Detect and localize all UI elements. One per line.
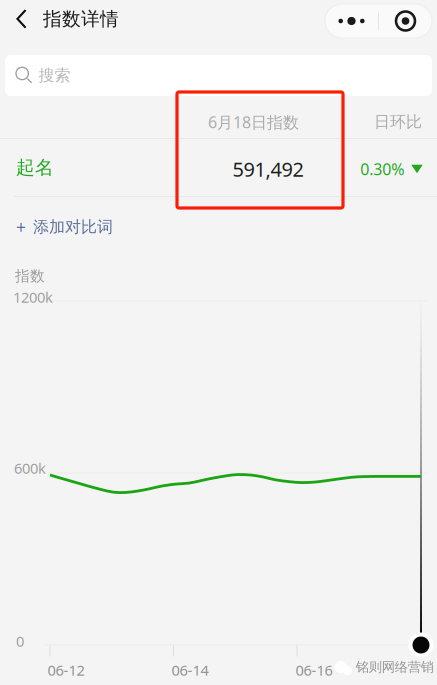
staticText: + <box>16 215 26 238</box>
staticText: 06-14 <box>171 660 208 680</box>
staticText: 指数详情 <box>43 7 119 30</box>
staticText: 06-16 <box>295 660 332 680</box>
staticText: 600k <box>14 458 46 478</box>
button[interactable]: 更多 <box>325 4 378 38</box>
staticText: 1200k <box>13 287 53 307</box>
staticText: 591,492 <box>232 156 303 182</box>
staticText: 添加对比词 <box>33 217 113 237</box>
staticText: 搜索 <box>38 66 70 85</box>
staticText: 指数 <box>15 267 45 285</box>
staticText: 日环比 <box>374 112 422 132</box>
button[interactable]: 关闭 <box>379 4 432 38</box>
staticText: 起名 <box>16 156 54 179</box>
button[interactable]: 返回 <box>0 0 43 38</box>
button[interactable]: + <box>0 197 437 239</box>
button[interactable]: 搜索 <box>5 55 432 96</box>
staticText: 铭则网络营销 <box>356 659 434 675</box>
staticText: 0 <box>16 631 24 651</box>
staticText: 6月18日指数 <box>208 111 299 133</box>
staticText: 06-12 <box>47 660 84 680</box>
staticText: 0.30% <box>360 158 404 180</box>
